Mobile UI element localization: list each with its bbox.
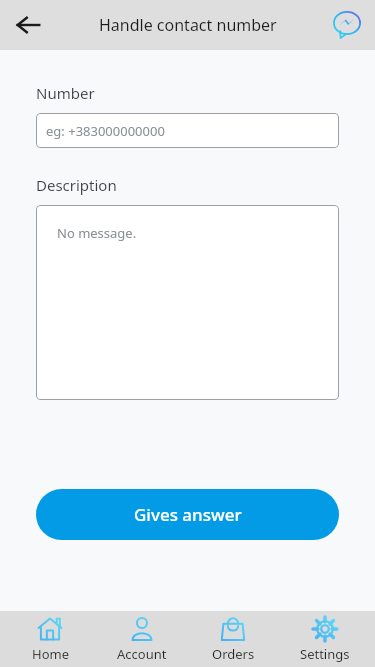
staticText: Number [36,83,95,103]
button[interactable]: Messenger [330,8,364,42]
button[interactable]: Gives answer [36,489,339,540]
button[interactable]: Orders [192,611,274,667]
staticText: eg: +383000000000 [46,122,165,140]
button[interactable]: Back [10,7,46,43]
button[interactable]: Settings [284,611,366,667]
button[interactable]: Home [9,611,91,667]
staticText: Home [32,645,69,663]
staticText: No message. [57,224,137,242]
staticText: Gives answer [134,503,242,526]
button[interactable]: Account [101,611,183,667]
staticText: Handle contact number [99,14,277,36]
staticText: Description [36,175,117,195]
staticText: Orders [212,645,255,663]
button[interactable]: No message. [36,205,339,400]
staticText: Account [117,645,167,663]
button[interactable]: eg: +383000000000 [36,113,339,148]
staticText: Settings [300,645,350,663]
